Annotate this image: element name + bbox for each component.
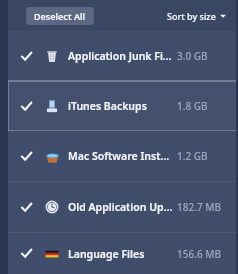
button[interactable]: Selected <box>8 81 238 131</box>
other: Selected <box>21 101 32 112</box>
other: Selected <box>21 51 32 62</box>
other: Selected <box>21 202 32 213</box>
button[interactable]: Sort by size <box>163 6 230 26</box>
staticText: 1.2 GB <box>177 149 208 163</box>
staticText: iTunes Backups <box>68 99 173 113</box>
staticText: Language Files <box>68 247 173 261</box>
staticText: Mac Software Install... <box>68 149 173 163</box>
staticText: 156.6 MB <box>177 247 221 261</box>
button[interactable]: Selected <box>8 233 238 274</box>
other: Selected <box>21 151 32 162</box>
staticText: 1.8 GB <box>177 99 208 113</box>
staticText: 182.7 MB <box>177 200 221 214</box>
other: Selected <box>21 248 32 259</box>
button[interactable]: Deselect All <box>26 7 94 25</box>
staticText: Old Application Upd... <box>68 200 173 214</box>
staticText: 3.0 GB <box>177 49 208 63</box>
staticText: Deselect All <box>34 10 86 22</box>
button[interactable]: Selected <box>8 31 238 81</box>
button[interactable]: Selected <box>8 131 238 181</box>
staticText: Application Junk Files <box>68 49 173 63</box>
button[interactable]: Selected <box>8 182 238 232</box>
staticText: Sort by size <box>167 10 216 22</box>
